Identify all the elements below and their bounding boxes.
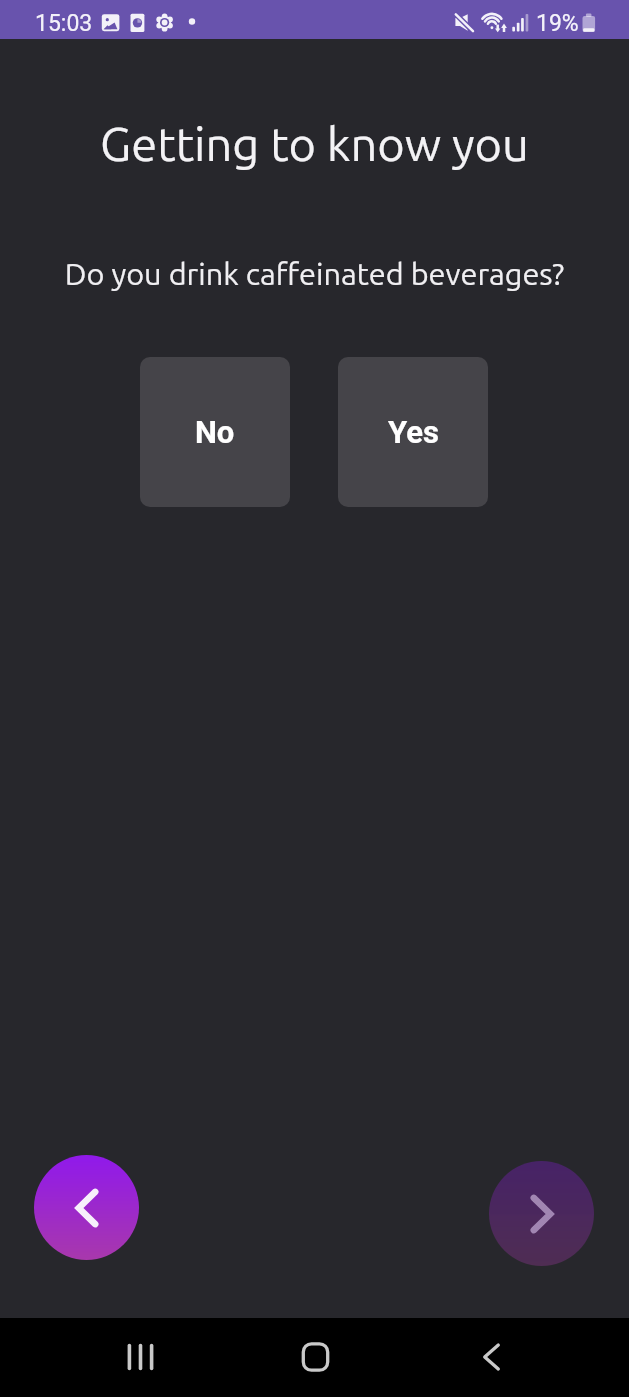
button[interactable]: Home <box>263 1331 368 1383</box>
staticText: Do you drink caffeinated beverages? <box>0 256 629 1397</box>
button[interactable]: Previous <box>34 1155 139 1260</box>
button[interactable]: Back <box>439 1331 544 1383</box>
staticText: No <box>195 414 235 450</box>
button[interactable]: Recent apps <box>88 1331 193 1383</box>
button[interactable]: No <box>140 357 290 507</box>
button[interactable]: Next <box>489 1161 594 1266</box>
staticText: 19% <box>536 10 579 37</box>
staticText: Getting to know you <box>0 117 629 1397</box>
staticText: Yes <box>388 414 439 450</box>
staticText: 15:03 <box>35 10 93 37</box>
button[interactable]: Yes <box>338 357 488 507</box>
